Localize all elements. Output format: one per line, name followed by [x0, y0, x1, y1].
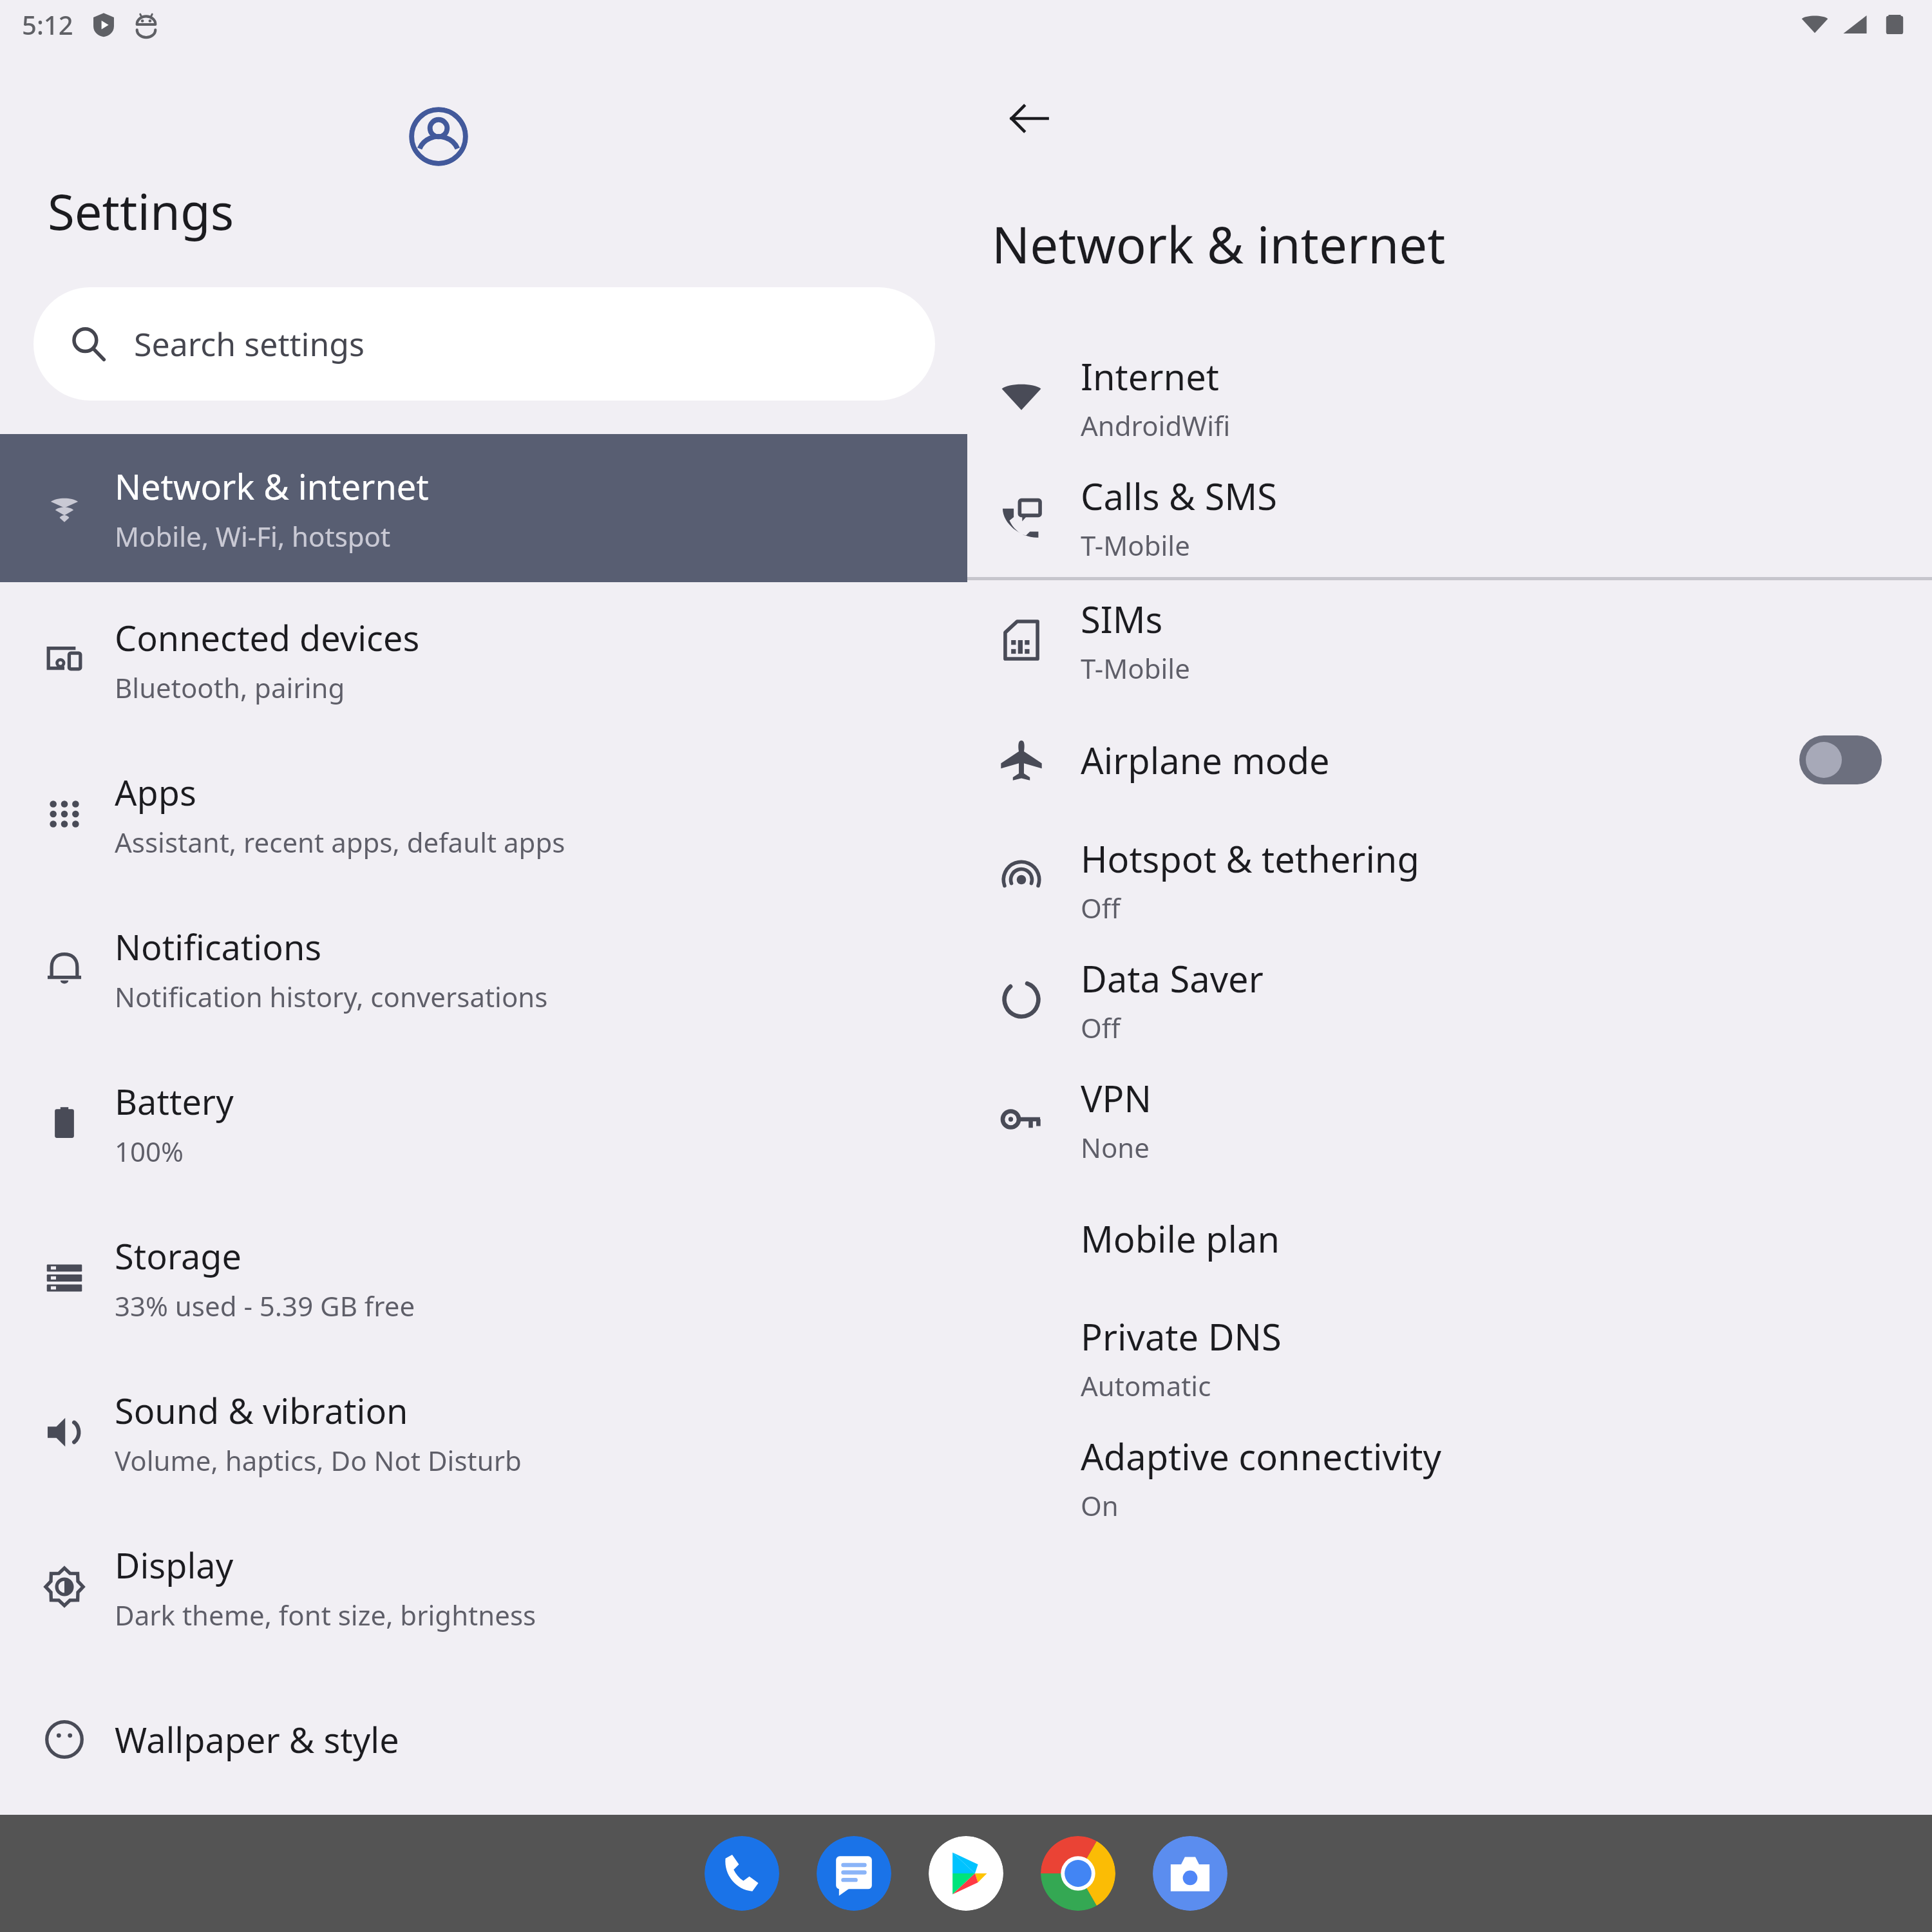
- staticText: Mobile plan: [1081, 1214, 1280, 1263]
- staticText: Network & internet: [992, 210, 1446, 278]
- button[interactable]: Internet: [967, 337, 1932, 457]
- button[interactable]: VPN: [967, 1059, 1932, 1179]
- staticText: Display: [115, 1541, 234, 1589]
- staticText: Connected devices: [115, 614, 420, 661]
- staticText: Sound & vibration: [115, 1387, 408, 1434]
- button[interactable]: Private DNS: [967, 1298, 1932, 1417]
- button[interactable]: Account: [409, 107, 468, 166]
- staticText: On: [1081, 1487, 1119, 1524]
- staticText: T-Mobile: [1081, 527, 1190, 563]
- button[interactable]: SIMs: [967, 580, 1932, 700]
- button[interactable]: Battery: [0, 1046, 967, 1200]
- staticText: Data Saver: [1081, 954, 1264, 1003]
- staticText: Wallpaper & style: [115, 1716, 399, 1763]
- button[interactable]: Mobile plan: [967, 1179, 1932, 1298]
- button[interactable]: Display: [0, 1510, 967, 1664]
- staticText: T-Mobile: [1081, 650, 1190, 687]
- staticText: SIMs: [1081, 594, 1163, 643]
- button[interactable]: Adaptive connectivity: [967, 1417, 1932, 1537]
- staticText: Settings: [48, 178, 234, 245]
- button[interactable]: Calls & SMS: [967, 457, 1932, 577]
- staticText: VPN: [1081, 1074, 1152, 1122]
- button[interactable]: Back: [990, 80, 1068, 157]
- staticText: Notification history, conversations: [115, 978, 548, 1015]
- staticText: Private DNS: [1081, 1312, 1282, 1361]
- staticText: Search settings: [134, 322, 365, 366]
- staticText: Airplane mode: [1081, 735, 1330, 784]
- button[interactable]: Chrome: [1041, 1836, 1115, 1911]
- button[interactable]: Phone: [705, 1836, 779, 1911]
- staticText: 5:12: [22, 7, 73, 42]
- staticText: Calls & SMS: [1081, 471, 1277, 520]
- staticText: Internet: [1081, 352, 1219, 401]
- button[interactable]: Network & internet: [0, 434, 967, 582]
- button[interactable]: Play Store: [929, 1836, 1003, 1911]
- button[interactable]: Data Saver: [967, 940, 1932, 1059]
- button[interactable]: Airplane mode: [967, 700, 1932, 820]
- button[interactable]: Connected devices: [0, 582, 967, 737]
- button[interactable]: Storage: [0, 1200, 967, 1355]
- button[interactable]: Sound & vibration: [0, 1355, 967, 1510]
- staticText: Hotspot & tethering: [1081, 834, 1419, 883]
- staticText: Apps: [115, 768, 196, 816]
- button[interactable]: Search settings: [33, 287, 935, 401]
- staticText: Network & internet: [115, 462, 429, 510]
- staticText: Off: [1081, 1009, 1121, 1046]
- staticText: Mobile, Wi-Fi, hotspot: [115, 518, 391, 554]
- staticText: AndroidWifi: [1081, 407, 1231, 444]
- button[interactable]: Airplane mode toggle: [1799, 735, 1882, 784]
- staticText: Storage: [115, 1232, 241, 1280]
- button[interactable]: Notifications: [0, 891, 967, 1046]
- staticText: 33% used - 5.39 GB free: [115, 1287, 415, 1324]
- staticText: Automatic: [1081, 1367, 1211, 1404]
- staticText: Adaptive connectivity: [1081, 1432, 1442, 1481]
- button[interactable]: Wallpaper & style: [0, 1664, 967, 1815]
- staticText: Notifications: [115, 923, 322, 971]
- staticText: None: [1081, 1129, 1150, 1166]
- button[interactable]: Camera: [1153, 1836, 1227, 1911]
- staticText: 100%: [115, 1133, 184, 1170]
- staticText: Assistant, recent apps, default apps: [115, 824, 565, 860]
- button[interactable]: Apps: [0, 737, 967, 891]
- staticText: Battery: [115, 1077, 234, 1125]
- staticText: Dark theme, font size, brightness: [115, 1596, 536, 1633]
- staticText: Volume, haptics, Do Not Disturb: [115, 1442, 522, 1479]
- button[interactable]: Messages: [817, 1836, 891, 1911]
- staticText: Off: [1081, 889, 1121, 926]
- staticText: Bluetooth, pairing: [115, 669, 345, 706]
- button[interactable]: Hotspot & tethering: [967, 820, 1932, 940]
